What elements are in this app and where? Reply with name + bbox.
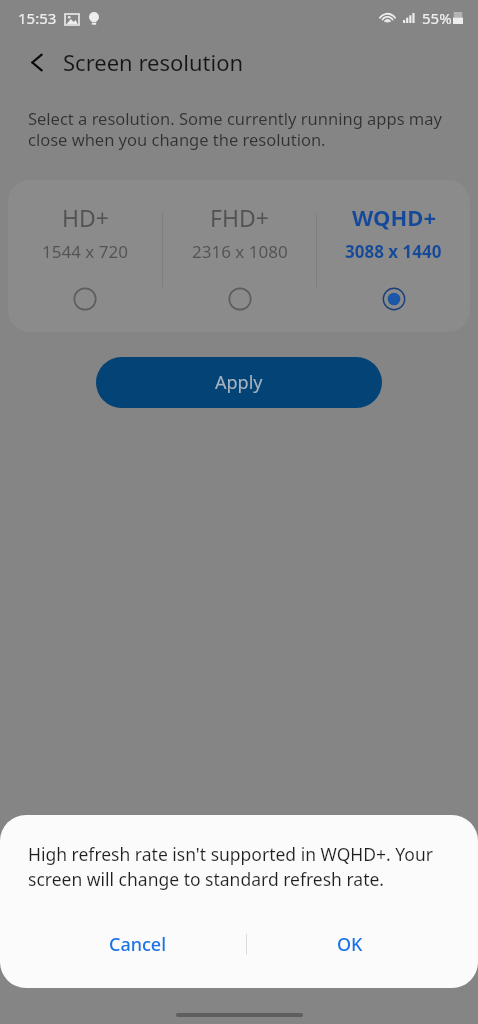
button[interactable]: FHD+	[163, 180, 316, 332]
staticText: High refresh rate isn't supported in WQH…	[28, 842, 458, 891]
button[interactable]: OK	[244, 922, 455, 966]
staticText: Cancel	[109, 932, 167, 957]
staticText: OK	[337, 932, 363, 957]
staticText: Apply	[215, 370, 263, 395]
staticText: HD+	[62, 202, 109, 233]
staticText: 3088 x 1440	[345, 240, 442, 263]
staticText: 2316 x 1080	[192, 240, 288, 263]
button[interactable]: Apply	[96, 357, 382, 408]
staticText: 55%	[422, 8, 452, 28]
staticText: 15:53	[18, 8, 57, 28]
staticText: FHD+	[210, 202, 269, 233]
button[interactable]: Back	[17, 42, 57, 82]
staticText: Screen resolution	[63, 47, 244, 77]
staticText: WQHD+	[352, 202, 436, 232]
button[interactable]: WQHD+	[317, 180, 470, 332]
button[interactable]: HD+	[8, 180, 162, 332]
staticText: Select a resolution. Some currently runn…	[28, 107, 446, 151]
staticText: 1544 x 720	[42, 240, 128, 263]
button[interactable]: Cancel	[33, 922, 243, 966]
